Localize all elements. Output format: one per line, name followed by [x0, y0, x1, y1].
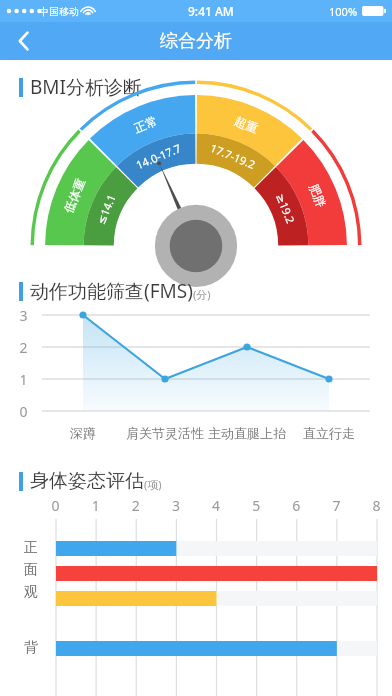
staticText: (项) [144, 477, 162, 492]
staticText: 中国移动 [39, 5, 79, 18]
staticText: BMI分析诊断 [30, 74, 143, 100]
staticText: 综合分析 [160, 30, 232, 53]
button[interactable]: Back [0, 22, 48, 60]
staticText: 身体姿态评估 [30, 469, 144, 493]
staticText: 9:41 AM [188, 3, 234, 19]
staticText: 动作功能筛查(FMS) [30, 278, 193, 304]
staticText: (分) [193, 287, 211, 302]
staticText: 100% [329, 4, 358, 19]
